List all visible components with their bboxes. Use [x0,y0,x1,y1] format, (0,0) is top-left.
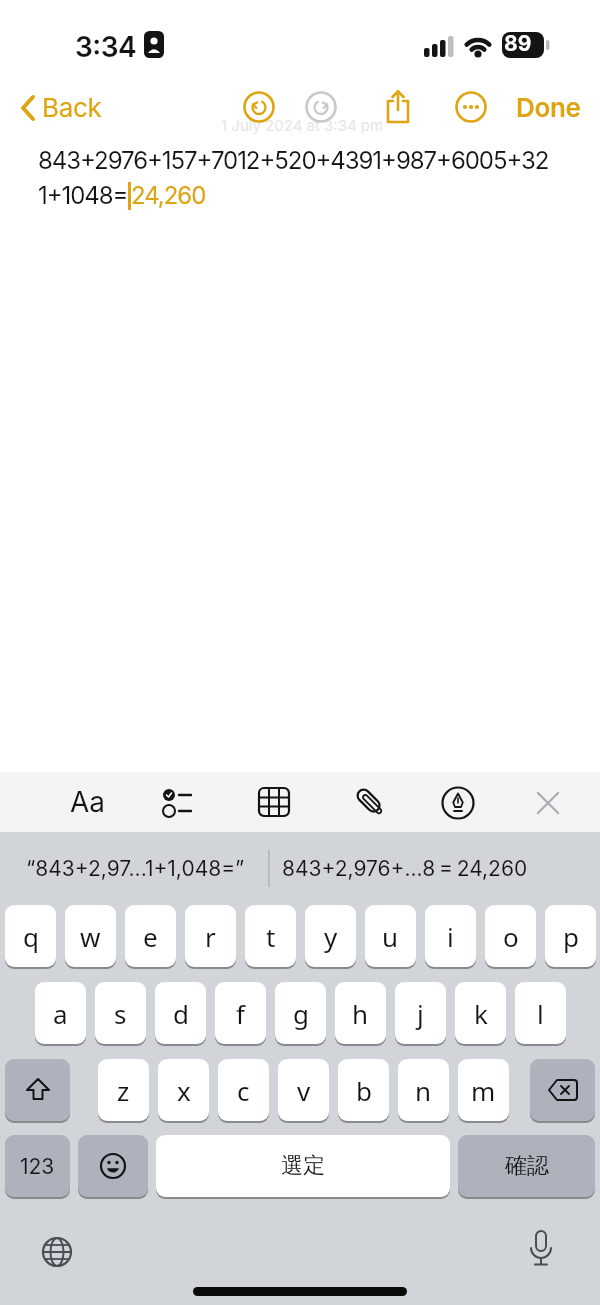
button[interactable]: f [215,982,266,1044]
button[interactable]: b [338,1059,389,1121]
button[interactable]: c [218,1059,269,1121]
staticText: 3:34 [75,30,137,64]
button[interactable]: 選定 [156,1135,450,1197]
button[interactable]: g [275,982,326,1044]
button[interactable]: j [395,982,446,1044]
staticText: 確認 [505,1152,549,1180]
staticText: 123 [20,1154,55,1179]
staticText: 89 [504,31,532,56]
staticText: d [173,996,189,1031]
staticText: h [352,996,369,1031]
button[interactable] [5,1059,70,1121]
staticText: r [205,919,216,954]
button[interactable]: t [245,905,296,967]
staticText: z [117,1073,130,1108]
button[interactable]: r [185,905,236,967]
staticText: 1 July 2024 at 3:34 pm [221,116,384,134]
button[interactable]: q [5,905,56,967]
button[interactable]: “843+2,97...1+1,048=” [0,832,270,905]
button[interactable]: Aa [62,772,114,832]
button[interactable]: Done [516,92,581,123]
button[interactable]: 123 [5,1135,70,1197]
button[interactable]: m [458,1059,509,1121]
button[interactable] [243,91,275,123]
staticText: k [474,996,488,1031]
button[interactable]: x [158,1059,209,1121]
button[interactable]: v [278,1059,329,1121]
button[interactable]: i [425,905,476,967]
button[interactable]: h [335,982,386,1044]
staticText: 選定 [281,1152,325,1180]
staticText: g [293,996,309,1031]
button[interactable] [78,1135,148,1197]
button[interactable]: Back [42,92,102,123]
staticText: v [297,1073,311,1108]
staticText: j [417,996,424,1031]
staticText: s [114,996,127,1031]
staticText: 843+2976+157+7012+520+4391+987+6005+32 [38,146,549,175]
staticText: x [177,1073,191,1108]
staticText: a [53,996,68,1031]
staticText: t [266,919,276,954]
staticText: m [471,1073,496,1108]
staticText: l [537,996,544,1031]
button[interactable] [441,786,475,820]
button[interactable] [161,786,193,818]
staticText: f [236,996,245,1031]
staticText: Done [516,92,581,123]
button[interactable] [530,1059,595,1121]
staticText: 1+1048= [38,181,128,210]
button[interactable] [41,1236,73,1268]
staticText: Back [42,92,102,123]
button[interactable]: u [365,905,416,967]
staticText: c [237,1073,250,1108]
staticText: b [356,1073,372,1108]
staticText: e [143,919,158,954]
button[interactable]: p [545,905,596,967]
button[interactable]: w [65,905,116,967]
button[interactable] [384,89,412,125]
button[interactable]: z [98,1059,149,1121]
button[interactable]: d [155,982,206,1044]
button[interactable]: n [398,1059,449,1121]
staticText: p [563,919,579,954]
button[interactable]: e [125,905,176,967]
staticText: n [415,1073,432,1108]
staticText: 843+2,976+...8 = 24,260 [282,856,528,881]
button[interactable] [258,787,290,817]
button[interactable]: y [305,905,356,967]
button[interactable]: l [515,982,566,1044]
button[interactable]: 確認 [458,1135,595,1197]
button[interactable] [455,91,487,123]
button[interactable]: a [35,982,86,1044]
button[interactable]: 843+2,976+...8 = 24,260 [272,832,538,905]
staticText: 24,260 [131,181,206,210]
button[interactable] [536,791,560,815]
button[interactable] [527,1230,555,1270]
staticText: y [324,919,338,954]
button[interactable]: o [485,905,536,967]
button[interactable] [305,91,337,123]
button[interactable] [354,786,386,818]
staticText: u [382,919,399,954]
staticText: “843+2,97...1+1,048=” [26,856,245,881]
staticText: o [503,919,519,954]
staticText: i [447,919,454,954]
button[interactable]: s [95,982,146,1044]
button[interactable] [20,95,36,121]
staticText: Aa [70,785,106,819]
staticText: w [80,919,101,954]
staticText: q [23,919,39,954]
button[interactable]: k [455,982,506,1044]
